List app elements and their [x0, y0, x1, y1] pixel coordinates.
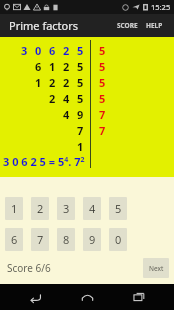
button[interactable]: 6: [5, 228, 23, 251]
staticText: 0: [115, 232, 122, 247]
button[interactable]: 7: [31, 228, 49, 251]
staticText: 7: [99, 123, 106, 138]
staticText: 2: [37, 201, 44, 216]
staticText: 4: [63, 91, 70, 106]
button[interactable]: 2: [31, 197, 49, 220]
button[interactable]: Recents: [122, 284, 156, 310]
staticText: 5: [115, 201, 122, 216]
staticText: Prime factors: [9, 18, 79, 33]
staticText: 5: [77, 75, 84, 90]
button[interactable]: SCORE: [113, 17, 142, 34]
staticText: 5: [99, 43, 106, 58]
staticText: 9: [77, 107, 84, 122]
staticText: 1: [35, 75, 42, 90]
button[interactable]: 8: [57, 228, 75, 251]
staticText: 6: [49, 43, 56, 58]
button[interactable]: Home: [70, 284, 104, 310]
button[interactable]: 4: [83, 197, 101, 220]
staticText: 5: [99, 75, 106, 90]
staticText: 3 0 6 2 5 = 54. 72: [3, 154, 85, 169]
staticText: Score 6/6: [7, 261, 51, 275]
staticText: 7: [37, 232, 44, 247]
staticText: 5: [99, 59, 106, 74]
staticText: 7: [77, 123, 84, 138]
button[interactable]: Back: [18, 284, 52, 310]
staticText: 2: [63, 75, 70, 90]
staticText: 6: [35, 59, 42, 74]
staticText: 4: [63, 107, 70, 122]
staticText: 2: [63, 59, 70, 74]
staticText: 2: [49, 75, 56, 90]
staticText: 3: [21, 43, 28, 58]
staticText: SCORE: [117, 21, 138, 30]
button[interactable]: 1: [5, 197, 23, 220]
staticText: 5: [99, 91, 106, 106]
staticText: 5: [77, 59, 84, 74]
button[interactable]: 0: [109, 228, 127, 251]
staticText: 1: [77, 139, 84, 154]
staticText: 0: [35, 43, 42, 58]
staticText: 1: [49, 59, 56, 74]
staticText: 4: [89, 201, 96, 216]
staticText: 8: [63, 232, 70, 247]
button[interactable]: 9: [83, 228, 101, 251]
staticText: Next: [149, 264, 164, 273]
staticText: 15:25: [151, 2, 171, 12]
staticText: 5: [77, 43, 84, 58]
button[interactable]: 3: [57, 197, 75, 220]
staticText: 9: [89, 232, 96, 247]
staticText: 7: [99, 107, 106, 122]
button[interactable]: 5: [109, 197, 127, 220]
button[interactable]: Next: [143, 258, 169, 278]
staticText: 5: [77, 91, 84, 106]
staticText: 6: [11, 232, 18, 247]
staticText: HELP: [146, 21, 163, 30]
staticText: 1: [11, 201, 18, 216]
staticText: 2: [63, 43, 70, 58]
staticText: 2: [49, 91, 56, 106]
staticText: 3: [63, 201, 70, 216]
button[interactable]: HELP: [142, 17, 167, 34]
